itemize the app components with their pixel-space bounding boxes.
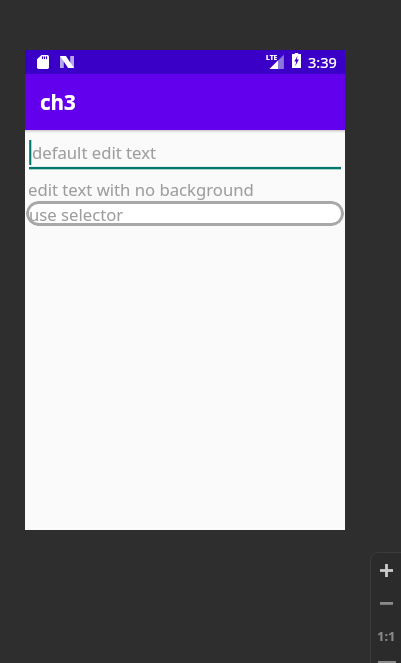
button[interactable]: edit text with no background — [25, 176, 345, 201]
button[interactable]: use selector — [26, 201, 344, 226]
button[interactable]: Fit to screen — [373, 661, 400, 663]
button[interactable]: ch3 — [25, 74, 345, 130]
staticText: ch3 — [40, 88, 76, 116]
button[interactable]: default edit text — [25, 130, 345, 170]
staticText: 1:1 — [377, 627, 396, 645]
staticText: use selector — [29, 203, 124, 226]
staticText: edit text with no background — [28, 178, 254, 201]
button[interactable]: Zoom out — [373, 587, 400, 620]
button[interactable]: Zoom to actual size — [373, 619, 400, 652]
staticText: LTE — [266, 53, 278, 62]
button[interactable]: Zoom in — [373, 554, 400, 587]
staticText: default edit text — [32, 141, 157, 164]
staticText: 3:39 — [308, 52, 337, 72]
